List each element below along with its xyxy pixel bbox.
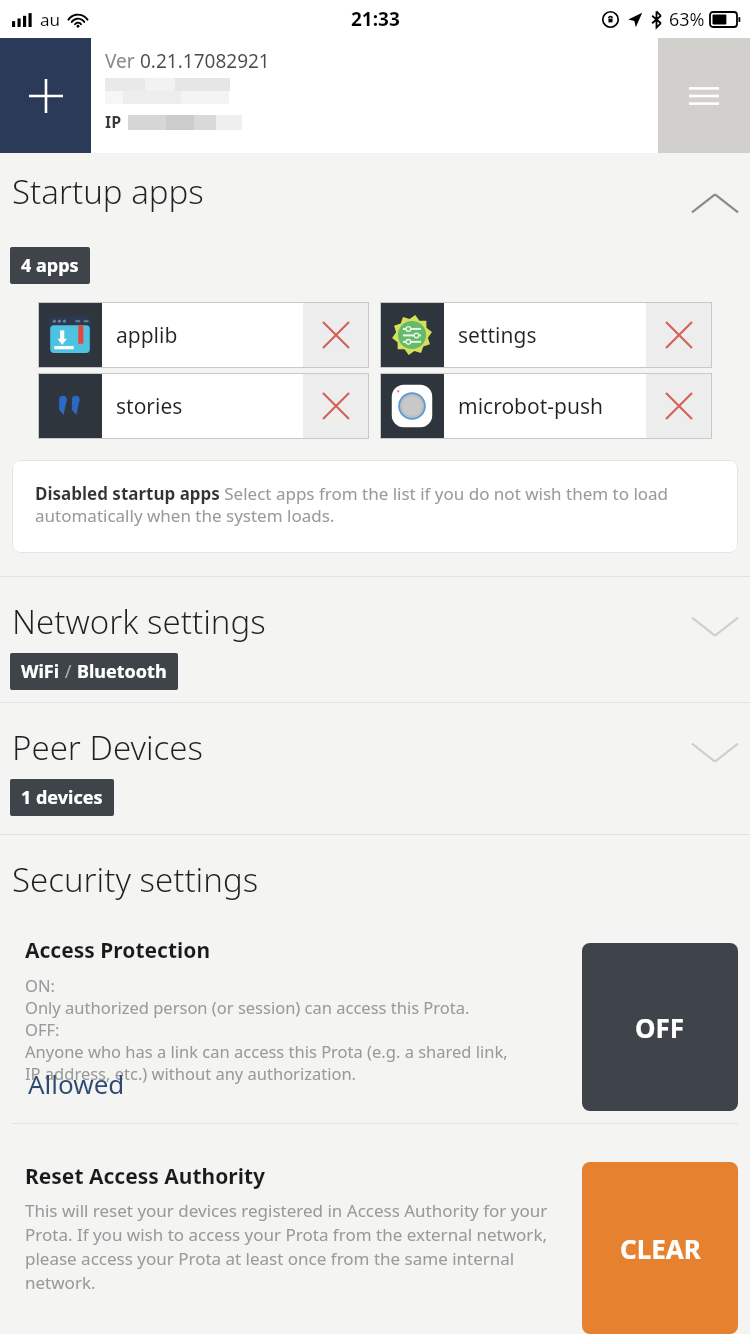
- staticText: 21:33: [351, 6, 400, 32]
- staticText: ON:: [25, 974, 55, 996]
- button[interactable]: Menu: [658, 38, 750, 153]
- staticText: Disabled startup apps Select apps from t…: [35, 482, 718, 527]
- staticText: microbot-push: [458, 392, 646, 421]
- staticText: stories: [116, 392, 303, 421]
- staticText: Ver: [105, 48, 140, 74]
- staticText: This will reset your devices registered …: [25, 1199, 560, 1294]
- button[interactable]: Peer Devices: [0, 703, 750, 834]
- staticText: WiFi: [21, 659, 60, 684]
- staticText: Anyone who has a link can access this Pr…: [25, 1040, 508, 1062]
- staticText: 63%: [669, 7, 705, 32]
- button[interactable]: Collapse: [680, 169, 750, 239]
- staticText: IP address, etc.) without any authorizat…: [25, 1062, 357, 1084]
- button[interactable]: Disabled startup apps Select apps from t…: [12, 460, 738, 553]
- staticText: au: [40, 8, 61, 31]
- button[interactable]: CLEAR: [582, 1162, 738, 1334]
- staticText: 4 apps: [21, 253, 79, 278]
- staticText: Startup apps: [12, 169, 204, 214]
- button[interactable]: Add: [0, 38, 91, 153]
- staticText: Security settings: [12, 857, 259, 902]
- staticText: Network settings: [12, 599, 266, 644]
- staticText: OFF: [635, 1010, 685, 1045]
- staticText: 0.21.17082921: [140, 48, 270, 74]
- button[interactable]: applib: [38, 302, 369, 368]
- staticText: Peer Devices: [12, 725, 203, 770]
- button[interactable]: Expand Network settings: [680, 591, 750, 661]
- staticText: IP: [105, 111, 122, 133]
- staticText: settings: [458, 321, 646, 350]
- staticText: Only authorized person (or session) can …: [25, 996, 470, 1018]
- button[interactable]: microbot-push: [380, 373, 712, 439]
- button[interactable]: settings: [380, 302, 712, 368]
- button[interactable]: Remove settings: [646, 302, 712, 368]
- staticText: 1 devices: [21, 785, 103, 810]
- button[interactable]: Expand Peer Devices: [680, 717, 750, 787]
- staticText: /: [60, 659, 77, 684]
- staticText: Reset Access Authority: [25, 1162, 266, 1191]
- staticText: Access Protection: [25, 936, 211, 965]
- button[interactable]: Remove applib: [303, 302, 369, 368]
- staticText: applib: [116, 321, 303, 350]
- button[interactable]: stories: [38, 373, 369, 439]
- button[interactable]: Remove stories: [303, 373, 369, 439]
- button[interactable]: Network settings: [0, 577, 750, 702]
- staticText: CLEAR: [620, 1231, 701, 1266]
- button[interactable]: OFF: [582, 943, 738, 1111]
- staticText: Allowed: [28, 1066, 125, 1101]
- staticText: Bluetooth: [77, 659, 167, 684]
- button[interactable]: Remove microbot-push: [646, 373, 712, 439]
- staticText: OFF:: [25, 1018, 60, 1040]
